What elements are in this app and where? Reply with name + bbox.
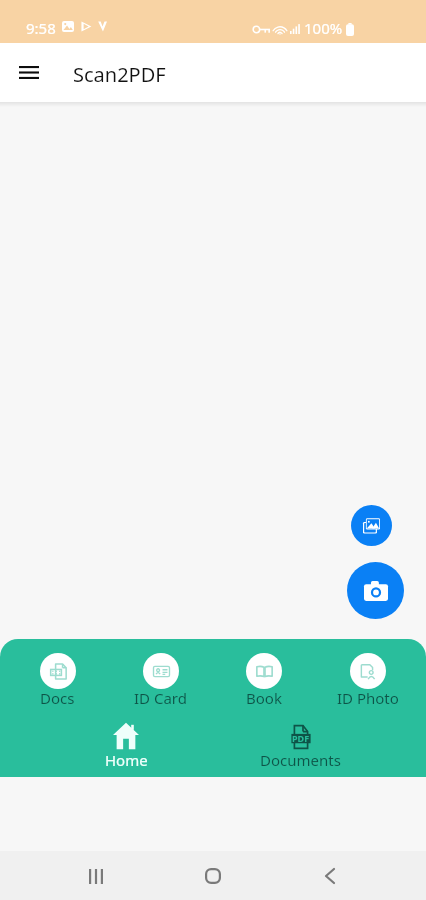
staticText: Scan2PDF bbox=[73, 61, 166, 88]
button[interactable]: Home bbox=[192, 855, 234, 897]
staticText: Book bbox=[246, 688, 282, 708]
staticText: ID Photo bbox=[337, 688, 399, 708]
staticText: ID Card bbox=[134, 688, 187, 708]
button[interactable]: Book bbox=[212, 639, 316, 709]
staticText: PDF bbox=[292, 732, 310, 744]
staticText: Documents bbox=[260, 750, 341, 770]
button[interactable]: Import image bbox=[351, 505, 392, 546]
button[interactable]: Back bbox=[309, 855, 351, 897]
staticText: Home bbox=[105, 750, 148, 770]
button[interactable]: Take photo bbox=[347, 562, 404, 619]
button[interactable]: Recent apps bbox=[75, 855, 117, 897]
button[interactable]: ID Card bbox=[109, 639, 212, 709]
staticText: 100% bbox=[304, 18, 343, 38]
button[interactable]: Docs bbox=[6, 639, 109, 709]
button[interactable]: PDF bbox=[257, 722, 343, 770]
staticText: Docs bbox=[40, 688, 75, 708]
button[interactable]: Open navigation menu bbox=[9, 53, 48, 92]
button[interactable]: ID Photo bbox=[316, 639, 420, 709]
staticText: 9:58 bbox=[26, 18, 56, 38]
button[interactable]: Home bbox=[83, 722, 169, 770]
